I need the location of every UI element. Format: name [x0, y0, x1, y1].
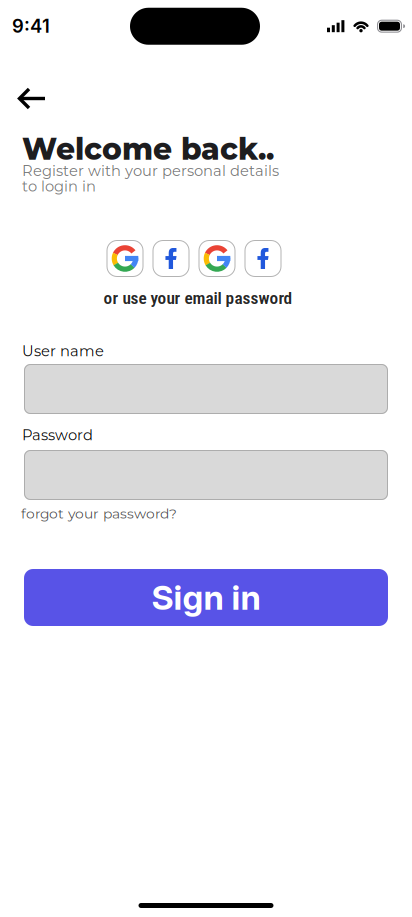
- staticText: 9:41: [12, 15, 50, 37]
- button[interactable]: Back: [18, 88, 46, 109]
- staticText: Password: [22, 426, 93, 444]
- button[interactable]: Password: [24, 450, 388, 500]
- button[interactable]: Sign in with Google: [106, 240, 143, 277]
- button[interactable]: Sign in with Facebook: [152, 240, 189, 277]
- button[interactable]: Sign in with Google: [198, 240, 235, 277]
- staticText: forgot your password?: [21, 505, 177, 522]
- staticText: Sign in: [151, 577, 260, 618]
- staticText: or use your email password: [103, 288, 292, 308]
- button[interactable]: User name: [24, 364, 388, 414]
- staticText: User name: [22, 342, 104, 360]
- button[interactable]: forgot your password?: [21, 505, 177, 522]
- staticText: Welcome back..: [22, 131, 274, 167]
- staticText: Register with your personal details to l…: [22, 163, 279, 194]
- button[interactable]: Sign in: [24, 569, 388, 626]
- button[interactable]: Sign in with Facebook: [244, 240, 281, 277]
